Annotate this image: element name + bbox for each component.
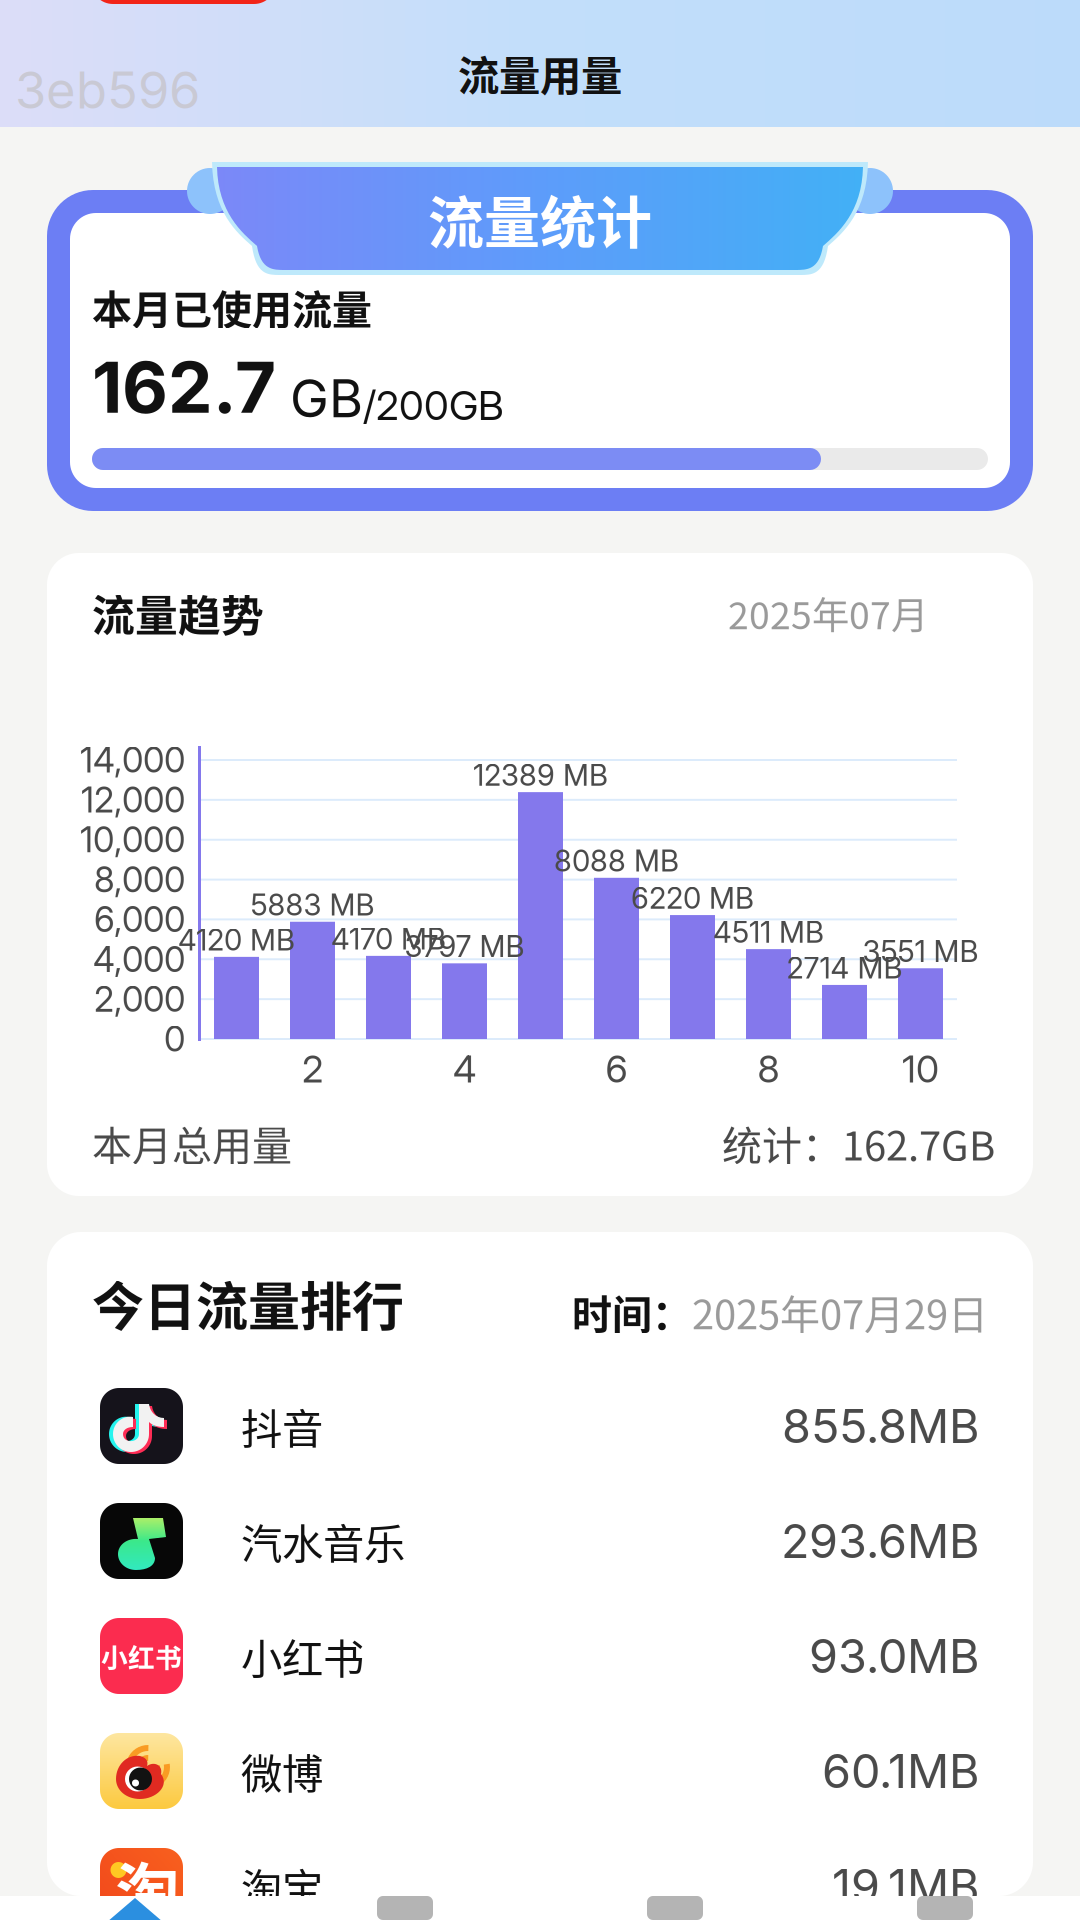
staticText: 6,000 (94, 898, 185, 940)
staticText: 淘宝 (241, 1856, 323, 1916)
staticText: /200GB (363, 381, 504, 430)
staticText: 293.6MB (781, 1513, 980, 1569)
button[interactable]: 汽水音乐 (100, 1483, 980, 1598)
staticText: 6220 MB (631, 880, 754, 916)
staticText: 抖音 (241, 1396, 323, 1456)
staticText: 2714 MB (786, 950, 902, 986)
staticText: 60.1MB (822, 1743, 980, 1799)
staticText: 8,000 (94, 859, 185, 900)
button[interactable]: 首页 (0, 1896, 270, 1920)
staticText: 流量趋势 (92, 582, 264, 644)
staticText: 162.7 (92, 344, 276, 430)
staticText: 19.1MB (832, 1858, 980, 1914)
staticText: 8088 MB (554, 843, 679, 879)
staticText: 本月总用量 (92, 1114, 292, 1172)
staticText: 4120 MB (178, 922, 295, 958)
staticText: 流量用量 (458, 43, 622, 103)
staticText: 本月已使用流量 (92, 278, 372, 336)
staticText: 淘 (115, 1842, 179, 1920)
staticText: 3551 MB (862, 933, 978, 969)
staticText: 4170 MB (331, 921, 446, 957)
staticText: 小红书 (101, 1637, 182, 1675)
staticText: 4511 MB (713, 914, 824, 950)
button[interactable]: 小红书 (100, 1598, 980, 1713)
staticText: 2025年07月 (728, 586, 928, 640)
staticText: 10 (902, 1046, 939, 1092)
staticText: 小红书 (241, 1626, 364, 1686)
staticText: 流量统计 (428, 178, 652, 259)
staticText: 14,000 (80, 739, 185, 781)
staticText: 4,000 (93, 938, 185, 980)
button[interactable]: 淘 (100, 1828, 980, 1920)
staticText: 0 (164, 1018, 185, 1060)
staticText: 12389 MB (473, 757, 608, 793)
button[interactable]: 我的 (810, 1896, 1080, 1920)
button[interactable]: 工具 (540, 1896, 810, 1920)
button[interactable]: 抖音 (100, 1368, 980, 1483)
staticText: 微博 (241, 1741, 323, 1801)
staticText: 今日流量排行 (92, 1265, 404, 1341)
staticText: 2,000 (94, 978, 185, 1020)
staticText: 6 (605, 1046, 627, 1092)
staticText: 10,000 (80, 819, 185, 861)
button[interactable]: 微博 (100, 1713, 980, 1828)
staticText: 4 (453, 1046, 476, 1092)
button[interactable]: 流量 (270, 1896, 540, 1920)
staticText: 5883 MB (250, 887, 374, 922)
staticText: 93.0MB (809, 1628, 980, 1684)
staticText: 2 (302, 1046, 323, 1092)
staticText: GB (290, 367, 363, 430)
staticText: 汽水音乐 (241, 1511, 405, 1571)
staticText: 统计：162.7GB (722, 1114, 995, 1172)
staticText: 3797 MB (404, 929, 524, 964)
staticText: 12,000 (81, 779, 185, 821)
staticText: 855.8MB (782, 1398, 980, 1454)
staticText: 时间： (572, 1283, 692, 1341)
staticText: 3eb596 (15, 59, 200, 121)
staticText: 2025年07月29日 (692, 1283, 988, 1341)
staticText: 8 (757, 1046, 779, 1092)
